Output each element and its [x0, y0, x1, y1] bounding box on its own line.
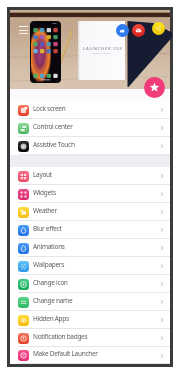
button[interactable]: Weather	[10, 203, 170, 221]
staticText: Control center	[33, 122, 160, 131]
button[interactable]: Animations	[10, 239, 170, 257]
button[interactable]: Widgets	[10, 185, 170, 203]
staticText: Wallpapers	[33, 260, 160, 269]
staticText: Lock screen	[33, 104, 160, 113]
button[interactable]: Make Default Launcher	[10, 347, 170, 364]
staticText: LAUNCHER IOS	[83, 45, 123, 51]
staticText: Assistive Touch	[33, 140, 160, 149]
button[interactable]: Menu	[19, 26, 28, 34]
staticText: Layout	[33, 170, 160, 179]
button[interactable]: Control center	[10, 119, 170, 137]
button[interactable]: Notification badges	[10, 329, 170, 347]
staticText: Weather	[33, 206, 160, 215]
staticText: Change name	[33, 296, 160, 305]
staticText: Hidden Apps	[33, 314, 160, 323]
button[interactable]: Change icon	[10, 275, 170, 293]
button[interactable]: Lock screen	[10, 101, 170, 119]
staticText: Widgets	[33, 188, 160, 197]
button[interactable]: Hidden Apps	[10, 311, 170, 329]
staticText: Make Default Launcher	[33, 349, 160, 358]
staticText: Notification badges	[33, 332, 160, 341]
button[interactable]: Change name	[10, 293, 170, 311]
button[interactable]: Blur effect	[10, 221, 170, 239]
button[interactable]: Layout	[10, 167, 170, 185]
staticText: Blur effect	[33, 224, 160, 233]
staticText: design studio	[92, 51, 112, 54]
button[interactable]: Assistive Touch	[10, 137, 170, 155]
button[interactable]: Wallpapers	[10, 257, 170, 275]
staticText: Change icon	[33, 278, 160, 287]
staticText: Animations	[33, 242, 160, 251]
button[interactable]: Favorite	[144, 77, 165, 98]
